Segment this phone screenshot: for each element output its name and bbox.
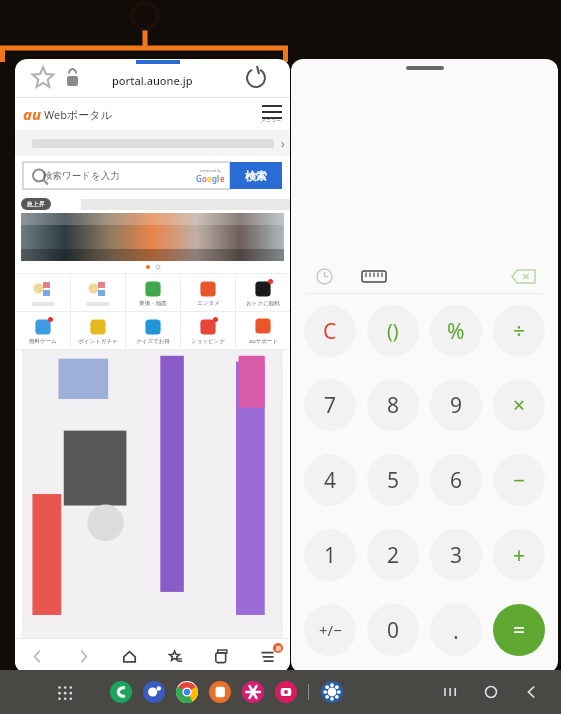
button[interactable]: 電話	[106, 677, 136, 707]
button[interactable]: 進む	[60, 639, 106, 673]
button[interactable]: ホーム	[471, 672, 511, 712]
button[interactable]: 0	[367, 604, 419, 656]
staticText: .	[453, 615, 459, 645]
button[interactable]: −	[493, 454, 545, 506]
staticText: 0	[387, 616, 400, 645]
button[interactable]: エンタメ	[181, 274, 235, 311]
staticText: o	[207, 173, 212, 184]
button[interactable]: 無料ゲーム	[15, 312, 70, 349]
button[interactable]: クイズでお得	[126, 312, 180, 349]
staticText: 7	[324, 391, 337, 420]
button[interactable]: ホーム	[106, 639, 152, 673]
staticText: e	[220, 173, 225, 184]
button[interactable]: 単位変換	[359, 265, 389, 287]
staticText: o	[202, 173, 207, 184]
staticText: G	[196, 173, 202, 184]
button[interactable]: ブックマーク	[152, 639, 198, 673]
button[interactable]: 9	[430, 379, 482, 431]
staticText: ›	[281, 135, 285, 151]
button[interactable]: 乗換・地図	[126, 274, 180, 311]
button[interactable]: 戻る	[511, 672, 551, 712]
button[interactable]: C	[304, 305, 356, 357]
staticText: au	[23, 104, 41, 124]
button[interactable]: 3	[430, 529, 482, 581]
button[interactable]: 連絡先	[139, 677, 169, 707]
staticText: 9	[450, 391, 463, 420]
button[interactable]: おトクに観戦	[236, 274, 290, 311]
button[interactable]: =	[493, 604, 545, 656]
button[interactable]: 検索ワードを入力	[23, 162, 282, 189]
staticText: ショッピング	[191, 338, 225, 345]
staticText: 4	[324, 466, 337, 495]
staticText: auサポート	[249, 337, 278, 345]
button[interactable]: Chrome	[172, 677, 202, 707]
staticText: 無料ゲーム	[29, 338, 57, 345]
button[interactable]: %	[430, 305, 482, 357]
button[interactable]: アプリ	[15, 274, 70, 311]
staticText: portal.auone.jp	[112, 73, 193, 88]
staticText: =	[513, 616, 526, 645]
button[interactable]: 設定	[317, 677, 347, 707]
button[interactable]: 検索	[230, 162, 282, 189]
button[interactable]: ギャラリー	[238, 677, 268, 707]
button[interactable]: 履歴	[311, 263, 337, 289]
staticText: 8	[387, 391, 400, 420]
staticText: メニュー	[261, 117, 282, 123]
button[interactable]: 5	[367, 454, 419, 506]
button[interactable]: 7	[304, 379, 356, 431]
staticText: +/−	[319, 620, 342, 640]
button[interactable]: .	[430, 604, 482, 656]
staticText: +	[513, 541, 526, 570]
staticText: Webポータル	[44, 107, 112, 122]
button[interactable]: 削除	[508, 264, 538, 288]
staticText: C	[323, 317, 337, 346]
button[interactable]: ×	[493, 379, 545, 431]
button[interactable]: 最近のアプリ	[431, 672, 471, 712]
button[interactable]: ショッピング	[181, 312, 235, 349]
staticText: 5	[387, 466, 400, 495]
button[interactable]: カメラ	[271, 677, 301, 707]
button[interactable]: ()	[367, 305, 419, 357]
staticText: 乗換・地図	[139, 300, 167, 307]
button[interactable]: 戻る	[15, 639, 60, 673]
button[interactable]: ポイントガチャ	[71, 312, 125, 349]
staticText: −	[513, 466, 526, 495]
button[interactable]: +/−	[304, 604, 356, 656]
staticText: 6	[450, 466, 463, 495]
button[interactable]: 4	[304, 454, 356, 506]
staticText: 検索ワードを入力	[43, 170, 120, 182]
button[interactable]: +	[493, 529, 545, 581]
button[interactable]: ÷	[493, 305, 545, 357]
staticText: クイズでお得	[136, 338, 170, 345]
staticText: g	[212, 173, 217, 184]
button[interactable]: メモ	[205, 677, 235, 707]
staticText: 検索	[245, 169, 267, 183]
staticText: ×	[513, 391, 526, 420]
button[interactable]: メニュー	[244, 639, 290, 673]
staticText: ÷	[513, 317, 526, 346]
button[interactable]: 1	[304, 529, 356, 581]
staticText: ()	[387, 318, 399, 344]
button[interactable]: 8	[367, 379, 419, 431]
button[interactable]: メニュー	[261, 105, 282, 123]
button[interactable]: アプリ一覧	[50, 678, 78, 706]
button[interactable]: アプリ	[71, 274, 125, 311]
staticText: 3	[450, 541, 463, 570]
button[interactable]: 2	[367, 529, 419, 581]
staticText: 急上昇	[27, 200, 45, 208]
staticText: ポイントガチャ	[78, 338, 118, 345]
staticText: l	[217, 173, 220, 184]
staticText: %	[447, 317, 465, 346]
staticText: 2	[387, 541, 400, 570]
button[interactable]: auサポート	[236, 312, 290, 349]
staticText: enhanced by	[200, 168, 222, 173]
staticText: 1	[324, 541, 337, 570]
button[interactable]: タブ	[198, 639, 244, 673]
staticText: 新	[276, 645, 281, 651]
staticText: おトクに観戦	[246, 300, 280, 307]
button[interactable]: 6	[430, 454, 482, 506]
staticText: エンタメ	[197, 300, 220, 307]
